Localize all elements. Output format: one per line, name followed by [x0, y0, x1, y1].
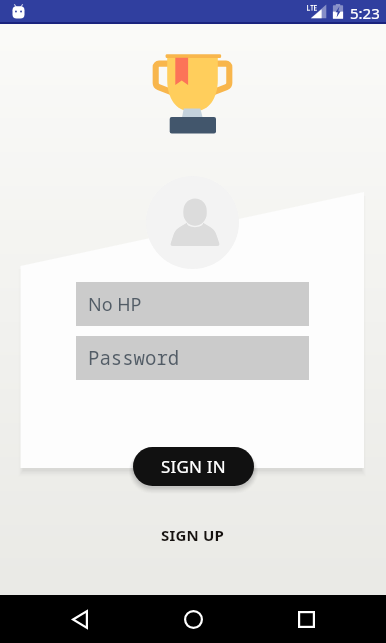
staticText: SIGN UP [161, 525, 225, 545]
button[interactable]: Recent apps [288, 601, 324, 637]
button[interactable]: Back [62, 601, 98, 637]
staticText: No HP [88, 292, 142, 317]
button[interactable]: Home [175, 601, 211, 637]
button[interactable]: No HP [76, 282, 309, 326]
staticText: SIGN IN [161, 455, 226, 478]
button[interactable]: Password [76, 336, 309, 380]
button[interactable]: SIGN UP [152, 522, 234, 548]
button[interactable]: SIGN IN [133, 447, 254, 486]
staticText: 5:23 [350, 3, 380, 23]
staticText: Password [88, 345, 180, 371]
